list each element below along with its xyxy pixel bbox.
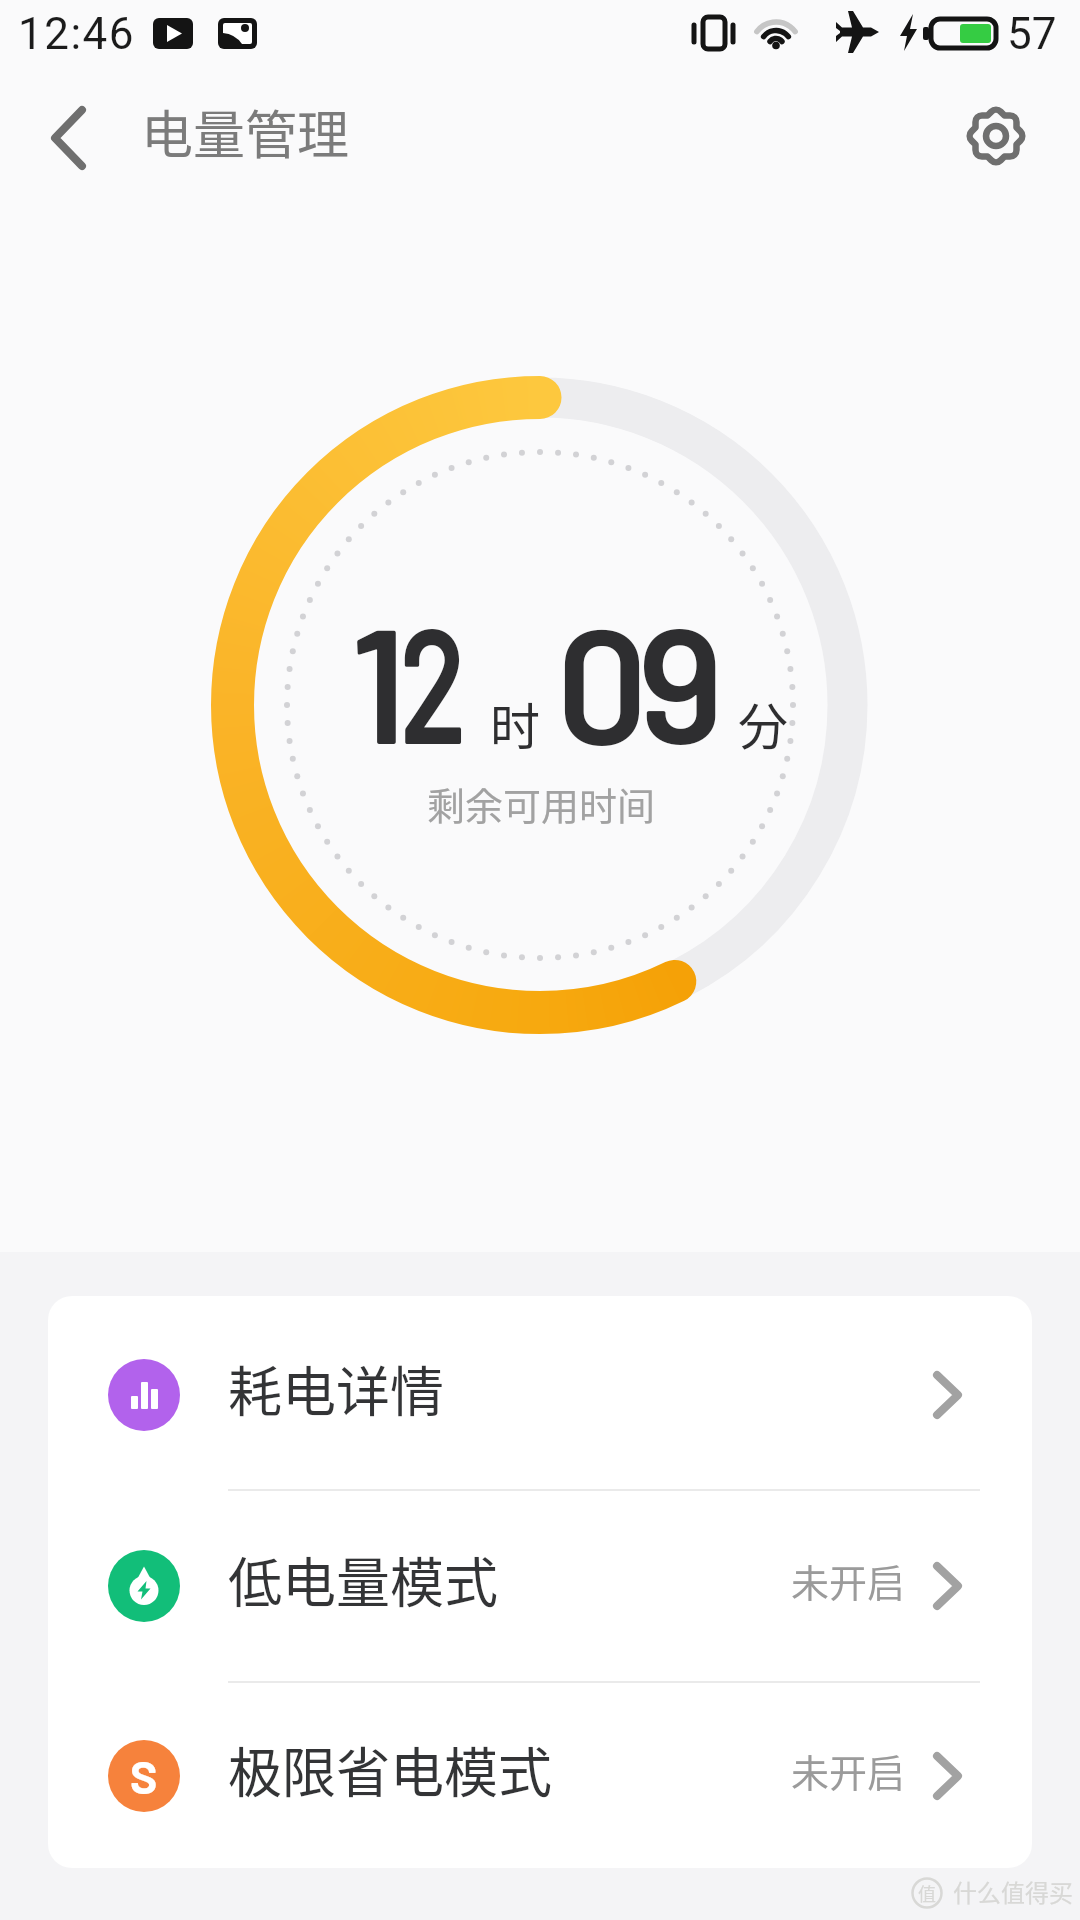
- button[interactable]: 低电量模式: [48, 1490, 1032, 1681]
- staticText: S: [130, 1748, 158, 1803]
- button[interactable]: [30, 105, 100, 175]
- button[interactable]: 极限省电模式: [48, 1680, 1032, 1868]
- staticText: 12:46: [18, 8, 136, 60]
- staticText: 未开启: [791, 1553, 906, 1608]
- staticText: 值: [918, 1880, 936, 1906]
- button[interactable]: [960, 100, 1032, 172]
- staticText: 极限省电模式: [228, 1730, 552, 1808]
- staticText: 09: [556, 582, 714, 776]
- staticText: 1: [350, 582, 398, 776]
- staticText: 电量管理: [141, 94, 350, 169]
- staticText: 什么值得买: [953, 1874, 1073, 1909]
- staticText: 耗电详情: [228, 1349, 444, 1427]
- staticText: 分: [738, 687, 788, 759]
- staticText: 未开启: [791, 1743, 906, 1798]
- staticText: 剩余可用时间: [427, 776, 656, 831]
- button[interactable]: 耗电详情: [48, 1299, 1032, 1490]
- staticText: 时: [490, 687, 540, 759]
- staticText: 2: [399, 582, 460, 776]
- staticText: 低电量模式: [228, 1540, 498, 1618]
- staticText: 57: [1007, 8, 1057, 60]
